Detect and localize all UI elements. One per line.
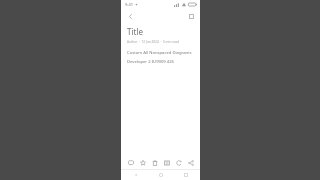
staticText: Author · 12 Jan 2024 · 5 min read — [127, 40, 179, 44]
staticText: Title — [127, 26, 143, 37]
staticText: Custom All Nonspaced Diagrams — [127, 50, 192, 56]
button[interactable]: Back — [131, 170, 140, 179]
button[interactable]: Like — [137, 157, 148, 168]
button[interactable]: Share — [185, 157, 196, 168]
button[interactable]: Delete — [149, 157, 160, 168]
button[interactable]: Home — [156, 170, 165, 179]
button[interactable]: Bookmark — [185, 10, 197, 22]
staticText: 9:41 — [125, 2, 133, 7]
button[interactable]: Comment — [125, 157, 136, 168]
button[interactable]: Back — [124, 10, 136, 22]
button[interactable]: Refresh — [173, 157, 184, 168]
button[interactable]: Recent apps — [181, 170, 190, 179]
staticText: Developer 2 IU9909 426 — [127, 59, 175, 65]
button[interactable]: Translate — [161, 157, 172, 168]
